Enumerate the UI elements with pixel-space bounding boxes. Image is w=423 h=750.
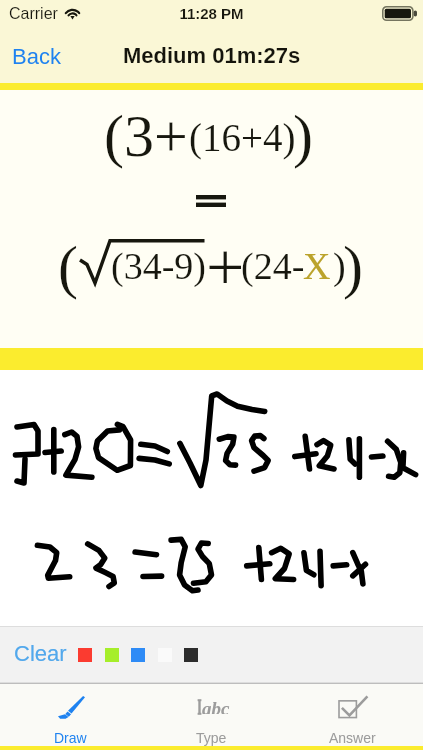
staticText: ) [343, 234, 363, 300]
staticText: Medium 01m:27s [123, 43, 301, 68]
staticText: 11:28 PM [0, 5, 423, 22]
staticText: ) [333, 245, 346, 287]
staticText: Type [196, 730, 227, 746]
staticText: Answer [329, 730, 376, 746]
staticText: (24- [241, 245, 305, 287]
button[interactable]: Clear [6, 635, 75, 672]
other: Wi-Fi [64, 7, 81, 19]
button[interactable]: Back [2, 40, 71, 73]
button[interactable]: Answer [282, 684, 423, 746]
staticText: Clear [14, 641, 67, 666]
staticText: Draw [54, 730, 87, 746]
button[interactable]: abc [141, 684, 282, 746]
staticText: ( [58, 234, 78, 300]
staticText: (16+4) [189, 116, 296, 159]
staticText: ) [293, 103, 313, 169]
staticText: abc [202, 698, 230, 714]
staticText: Back [12, 44, 61, 69]
staticText: + [206, 229, 245, 304]
button[interactable]: Draw [0, 684, 141, 746]
staticText: X [303, 245, 331, 287]
staticText: (3+ [104, 103, 188, 169]
staticText: Carrier [9, 5, 58, 23]
staticText: (34-9) [111, 245, 206, 287]
